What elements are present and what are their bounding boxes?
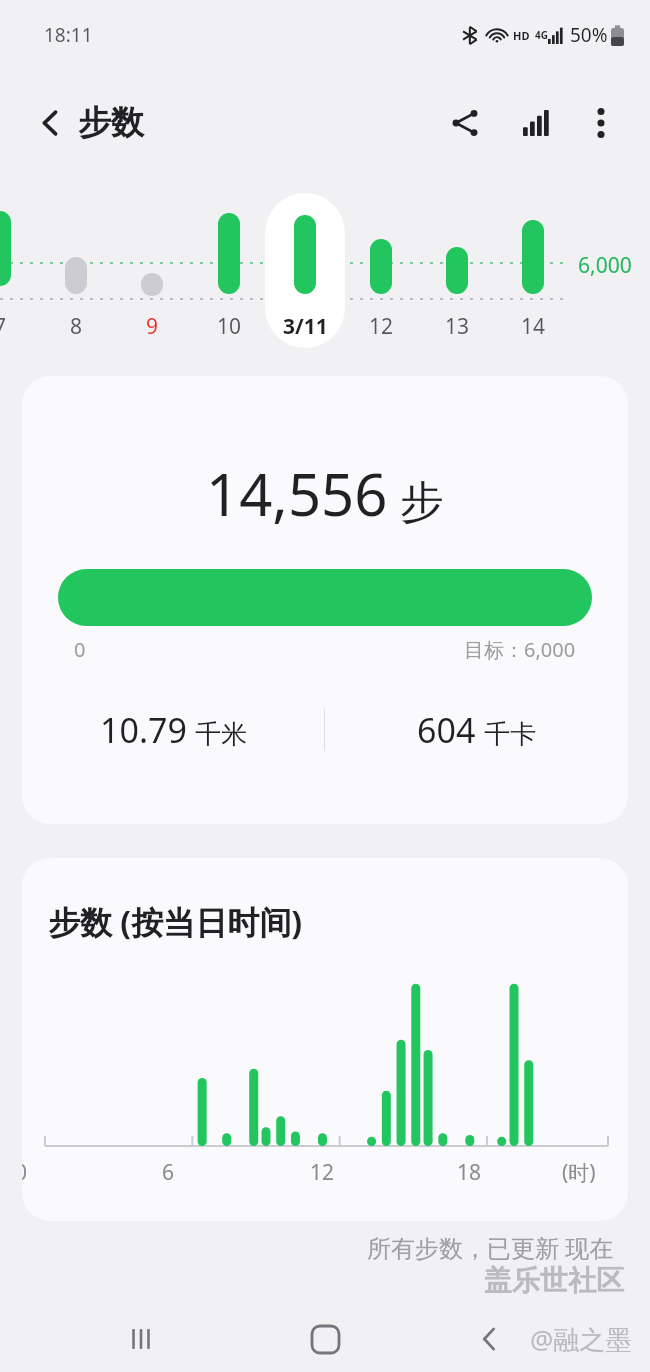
staticText: HD — [513, 28, 530, 43]
staticText: 604 — [417, 707, 476, 753]
staticText: 6,000 — [578, 251, 632, 280]
staticText: 9 — [146, 312, 159, 341]
staticText: 步数 — [78, 102, 144, 144]
button[interactable]: 13 — [417, 306, 497, 346]
staticText: 50% — [570, 22, 608, 48]
staticText: 千米 — [195, 718, 247, 751]
staticText: 0 — [22, 1158, 28, 1187]
staticText: 12 — [369, 312, 394, 341]
button[interactable]: More options — [574, 96, 628, 150]
button[interactable]: 8 — [36, 306, 116, 346]
staticText: 14 — [521, 312, 546, 341]
staticText: @融之墨 — [530, 1321, 632, 1357]
button[interactable]: Back — [456, 1306, 522, 1372]
staticText: 4G — [535, 28, 548, 42]
button[interactable]: 14,556 — [22, 376, 628, 824]
button[interactable]: 9 — [112, 306, 192, 346]
staticText: 千卡 — [484, 718, 536, 751]
staticText: 盖乐世社区 — [484, 1263, 624, 1298]
staticText: 7 — [0, 312, 7, 341]
staticText: 10 — [217, 312, 242, 341]
staticText: 所有步数，已更新 现在 — [367, 1231, 614, 1264]
staticText: 步 — [400, 475, 444, 530]
button[interactable]: 10 — [189, 306, 269, 346]
staticText: 10.79 — [100, 707, 187, 753]
button[interactable]: Share — [438, 96, 492, 150]
staticText: 14,556 — [206, 454, 388, 533]
staticText: 6 — [162, 1158, 175, 1187]
button[interactable]: 10.79 — [22, 707, 324, 753]
button[interactable]: Recent apps — [108, 1306, 174, 1372]
staticText: 0 — [74, 636, 86, 663]
staticText: 步数 (按当日时间) — [48, 900, 303, 944]
button[interactable]: 12 — [341, 306, 421, 346]
button[interactable]: 步数 (按当日时间) — [22, 858, 628, 1221]
button[interactable]: 3/11 — [265, 306, 345, 346]
button[interactable]: 7 — [0, 306, 40, 346]
staticText: 12 — [310, 1158, 335, 1187]
staticText: 18 — [457, 1158, 482, 1187]
button[interactable]: 604 — [325, 707, 628, 753]
button[interactable]: 14 — [493, 306, 573, 346]
button[interactable]: Home — [292, 1306, 358, 1372]
staticText: 18:11 — [44, 22, 93, 48]
staticText: 8 — [70, 312, 83, 341]
staticText: 目标：6,000 — [464, 636, 576, 663]
staticText: 3/11 — [283, 312, 328, 341]
button[interactable]: Chart — [510, 96, 564, 150]
button[interactable]: Back — [30, 94, 154, 152]
staticText: 13 — [445, 312, 470, 341]
staticText: (时) — [562, 1158, 596, 1187]
